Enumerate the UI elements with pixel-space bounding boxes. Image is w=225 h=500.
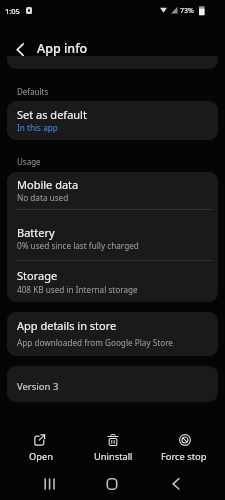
staticText: Defaults (17, 86, 49, 97)
staticText: Version 3 (17, 380, 59, 393)
staticText: No data used (17, 192, 69, 203)
button[interactable] (155, 428, 213, 464)
staticText: Open (29, 450, 53, 463)
staticText: Set as default (17, 107, 87, 122)
staticText: Usage (17, 156, 41, 167)
staticText: 0% used since last fully charged (17, 240, 139, 251)
button[interactable] (7, 101, 218, 140)
staticText: App details in store (17, 318, 117, 333)
button[interactable] (34, 470, 66, 498)
button[interactable] (7, 210, 218, 261)
staticText: App downloaded from Google Play Store (17, 337, 173, 348)
button[interactable] (12, 428, 69, 464)
button[interactable] (7, 172, 218, 210)
staticText: Force stop (161, 450, 207, 463)
staticText: Battery (17, 225, 55, 240)
button[interactable] (7, 36, 31, 61)
staticText: In this app (17, 122, 58, 133)
staticText: Uninstall (94, 450, 133, 463)
staticText: Storage (17, 268, 58, 283)
button[interactable] (160, 470, 192, 498)
button[interactable] (7, 312, 218, 356)
staticText: 408 KB used in Internal storage (17, 284, 138, 295)
staticText: 1:05 (5, 6, 20, 16)
staticText: App info (37, 40, 88, 57)
button[interactable] (84, 428, 141, 464)
staticText: Mobile data (17, 177, 79, 192)
button[interactable] (7, 261, 218, 303)
button[interactable] (96, 470, 128, 498)
staticText: 73% (180, 6, 194, 16)
